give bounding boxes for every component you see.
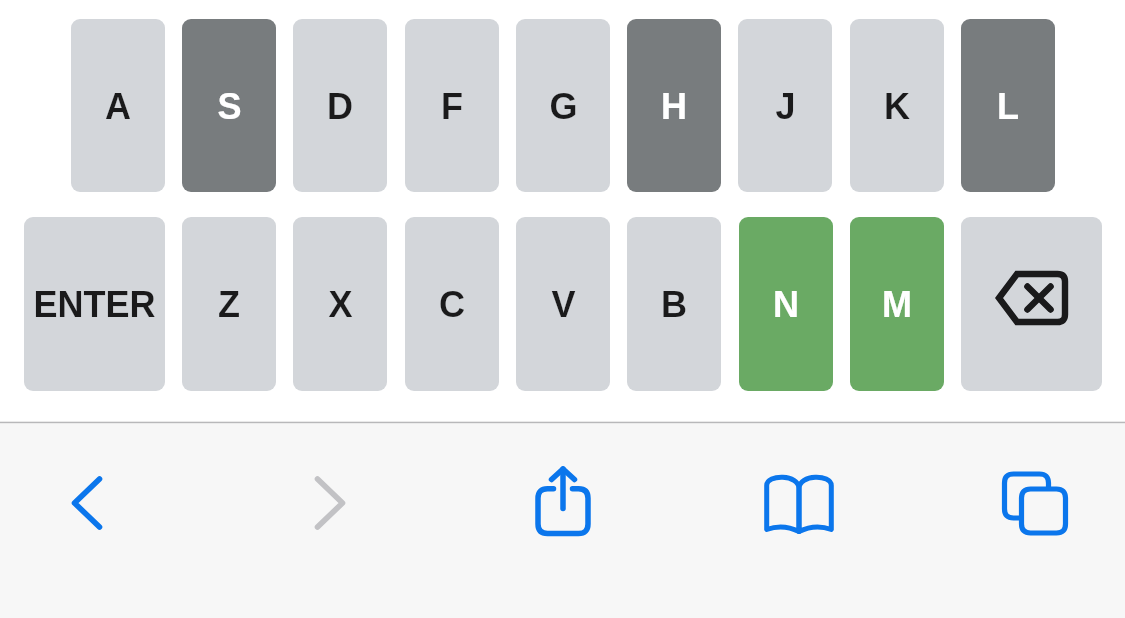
button[interactable]: Share (508, 448, 618, 558)
staticText: A (105, 86, 131, 126)
button[interactable]: B (627, 217, 721, 391)
button[interactable]: J (738, 19, 832, 192)
staticText: N (773, 284, 799, 324)
button[interactable]: Backspace (961, 217, 1102, 391)
button[interactable]: L (961, 19, 1055, 192)
button[interactable]: Z (182, 217, 276, 391)
button[interactable]: M (850, 217, 944, 391)
staticText: C (439, 284, 465, 324)
button[interactable]: G (516, 19, 610, 192)
button[interactable]: ENTER (24, 217, 165, 391)
button[interactable]: N (739, 217, 833, 391)
staticText: L (997, 86, 1019, 126)
button[interactable]: S (182, 19, 276, 192)
button[interactable]: Forward (275, 448, 385, 558)
staticText: J (775, 86, 796, 126)
staticText: V (551, 284, 576, 324)
staticText: D (327, 86, 353, 126)
button[interactable]: Tabs (980, 448, 1090, 558)
staticText: Z (218, 284, 240, 324)
staticText: G (549, 86, 578, 126)
button[interactable]: V (516, 217, 610, 391)
button[interactable]: C (405, 217, 499, 391)
button[interactable]: D (293, 19, 387, 192)
button[interactable]: X (293, 217, 387, 391)
button[interactable]: K (850, 19, 944, 192)
staticText: H (661, 86, 687, 126)
staticText: M (882, 284, 912, 324)
button[interactable]: H (627, 19, 721, 192)
staticText: B (661, 284, 687, 324)
button[interactable]: F (405, 19, 499, 192)
staticText: S (217, 86, 242, 126)
staticText: X (328, 284, 353, 324)
button[interactable]: Bookmarks (744, 448, 854, 558)
button[interactable]: Back (32, 448, 142, 558)
staticText: K (884, 86, 910, 126)
staticText: ENTER (33, 284, 156, 324)
staticText: F (441, 86, 463, 126)
button[interactable]: A (71, 19, 165, 192)
